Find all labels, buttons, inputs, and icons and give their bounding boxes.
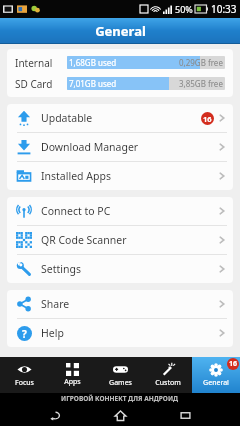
- button[interactable]: Updatable: [7, 104, 233, 132]
- staticText: Custom: [155, 378, 181, 388]
- button[interactable]: ?: [7, 319, 233, 347]
- button[interactable]: Share: [7, 290, 233, 318]
- staticText: 7,01GB used: [69, 78, 117, 89]
- staticText: 0,29GB free: [179, 57, 223, 68]
- staticText: Settings: [41, 262, 81, 276]
- staticText: 16: [229, 359, 238, 369]
- staticText: Share: [41, 297, 70, 311]
- staticText: 16: [203, 114, 212, 124]
- button[interactable]: Installed Apps: [7, 162, 233, 190]
- staticText: QR Code Scanner: [41, 233, 127, 247]
- button[interactable]: Recents: [175, 405, 195, 425]
- button[interactable]: Back: [45, 405, 65, 425]
- staticText: Updatable: [41, 111, 93, 125]
- staticText: Apps: [64, 377, 81, 387]
- button[interactable]: Connect to PC: [7, 197, 233, 225]
- staticText: Games: [109, 378, 132, 388]
- staticText: Connect to PC: [41, 204, 111, 218]
- button[interactable]: Games: [96, 357, 144, 393]
- button[interactable]: QR Code Scanner: [7, 226, 233, 254]
- staticText: 10:33: [211, 2, 237, 16]
- staticText: ?: [22, 327, 27, 341]
- button[interactable]: Custom: [144, 357, 192, 393]
- staticText: Installed Apps: [41, 169, 111, 183]
- staticText: General: [95, 22, 146, 40]
- button[interactable]: Settings: [7, 255, 233, 283]
- staticText: 1,68GB used: [69, 57, 117, 68]
- staticText: Internal: [15, 56, 67, 70]
- staticText: Help: [41, 326, 64, 340]
- staticText: ИГРОВОЙ КОННЕКТ ДЛЯ АНДРОИД: [61, 394, 179, 403]
- staticText: 3,85GB free: [179, 78, 223, 89]
- button[interactable]: Apps: [48, 357, 96, 393]
- staticText: SD Card: [15, 77, 67, 91]
- staticText: Download Manager: [41, 140, 139, 154]
- staticText: General: [203, 378, 229, 388]
- staticText: 50%: [175, 3, 193, 15]
- button[interactable]: General: [192, 357, 240, 393]
- button[interactable]: Home: [110, 405, 130, 425]
- button[interactable]: Download Manager: [7, 133, 233, 161]
- staticText: Focus: [15, 378, 34, 388]
- button[interactable]: Focus: [0, 357, 48, 393]
